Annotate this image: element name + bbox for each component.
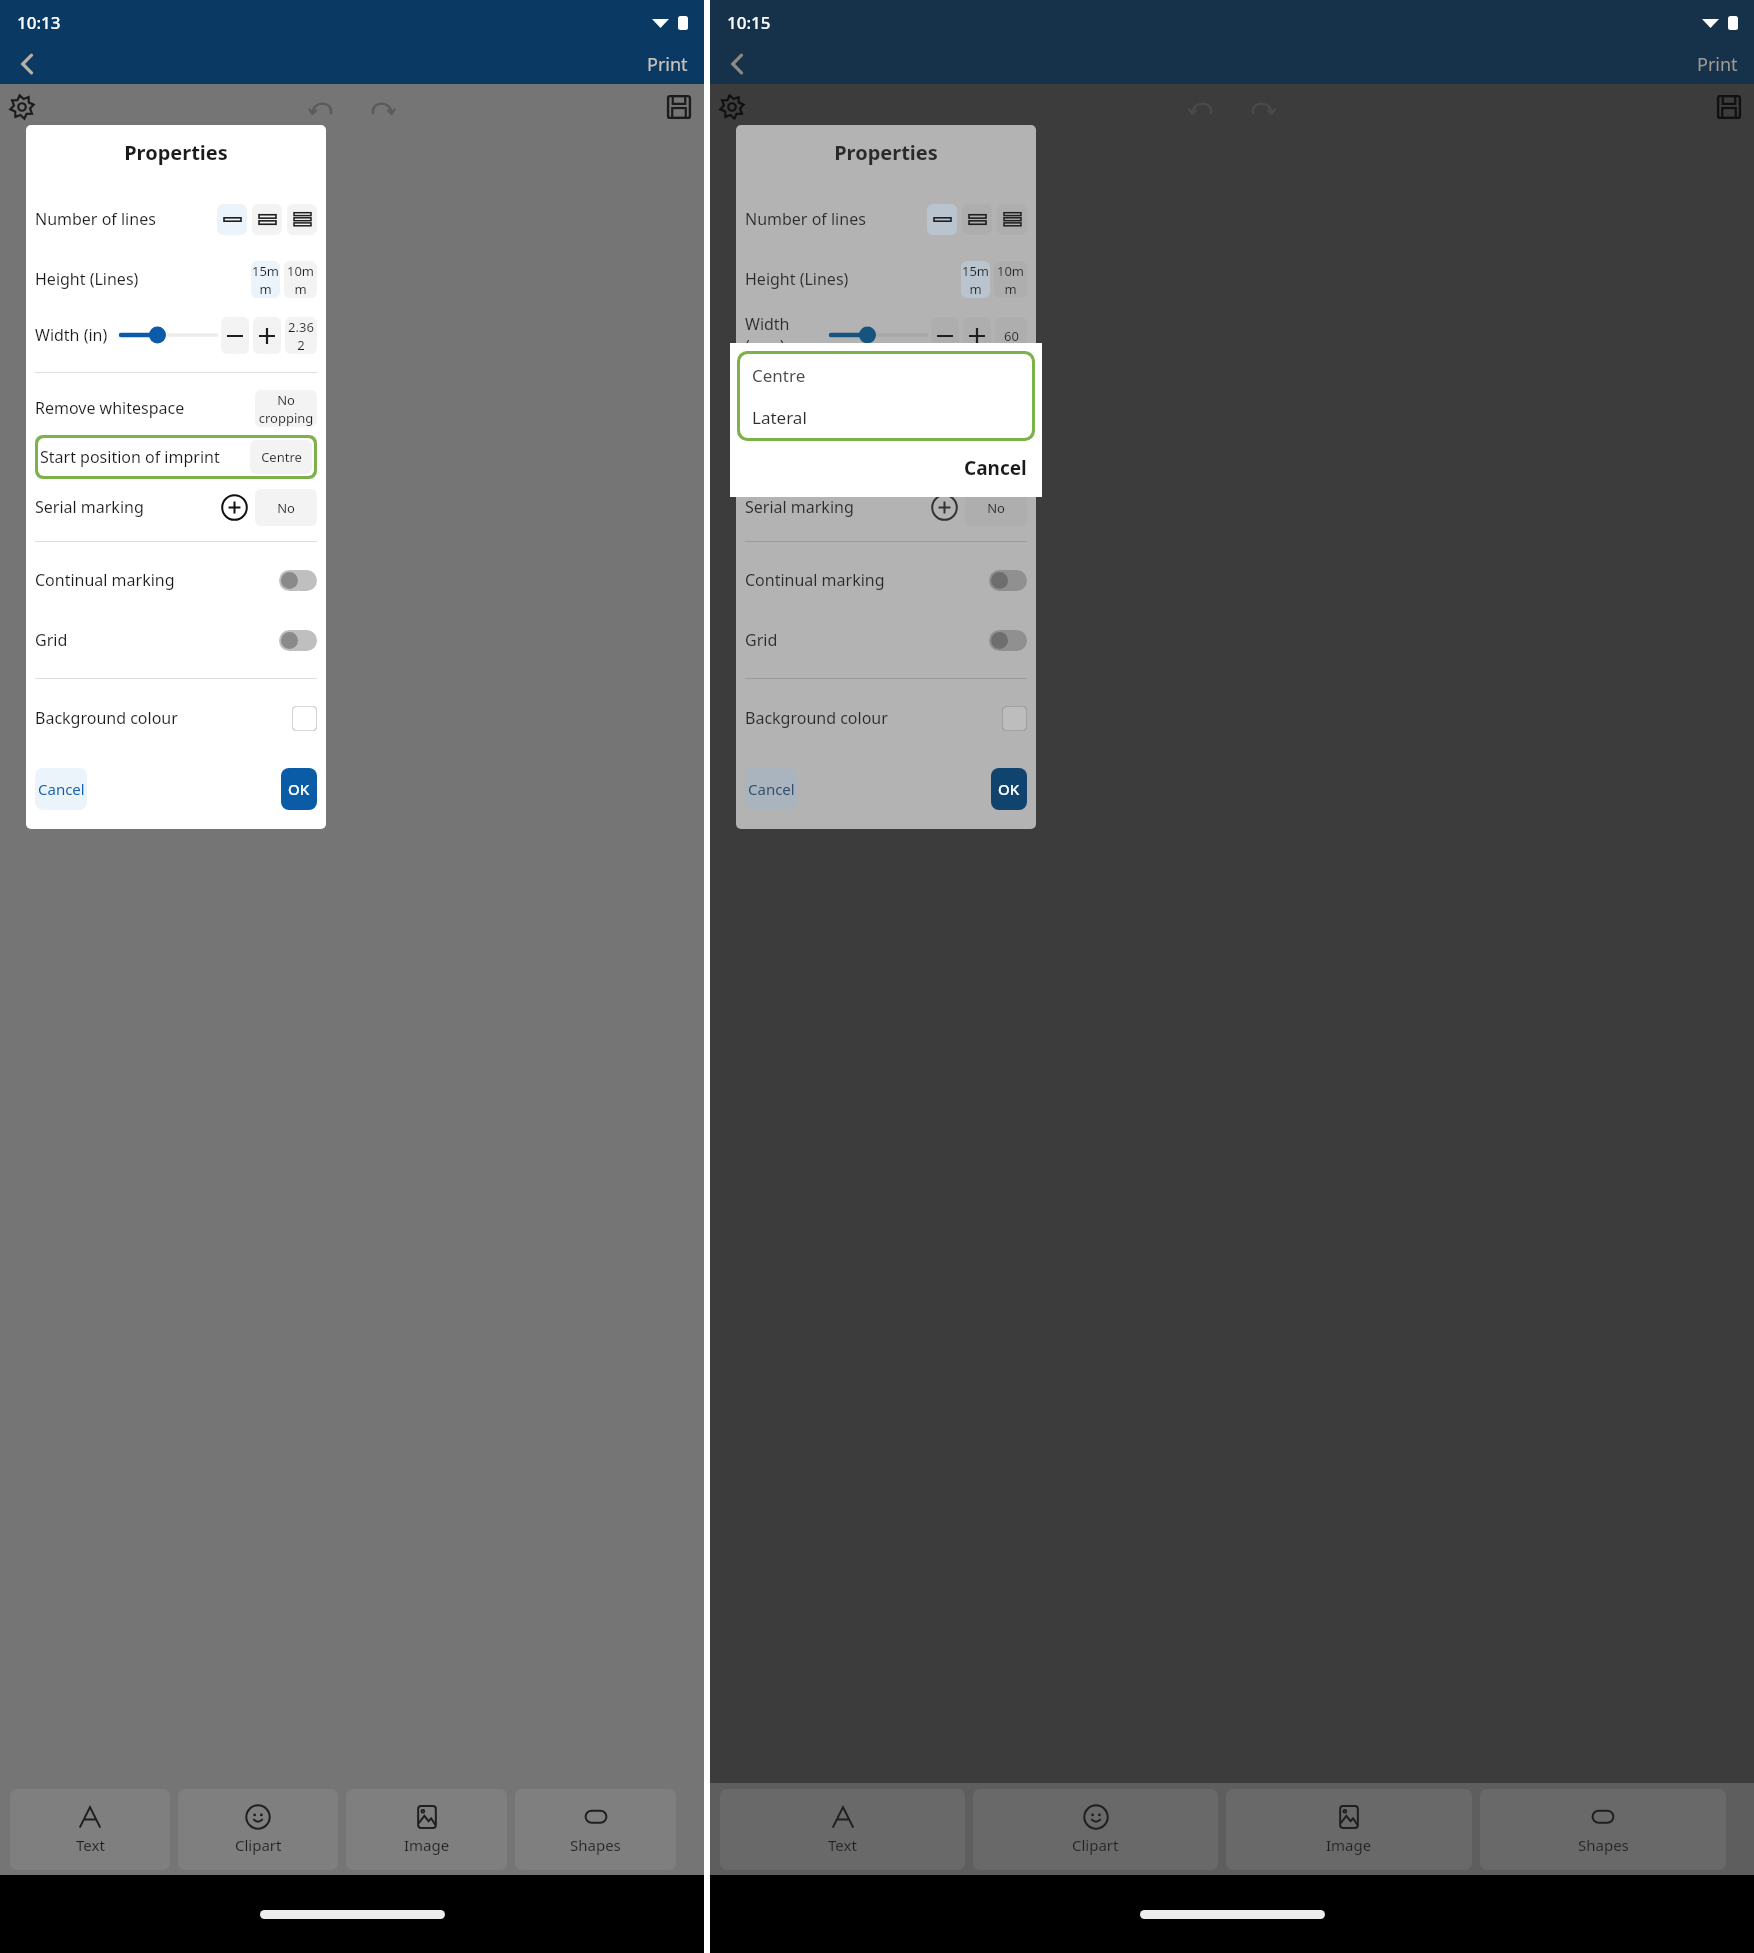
button[interactable]: Lateral xyxy=(740,396,1032,438)
staticText: Text xyxy=(76,1835,105,1855)
staticText: Serial marking xyxy=(745,496,928,518)
button[interactable]: Increase xyxy=(253,317,281,354)
button[interactable]: 15mm xyxy=(251,261,280,298)
button[interactable]: 2 line layout xyxy=(252,204,282,235)
staticText: No xyxy=(277,499,295,517)
staticText: Image xyxy=(404,1835,450,1855)
staticText: Grid xyxy=(745,629,989,651)
staticText: Background colour xyxy=(745,707,1002,729)
button[interactable]: Undo xyxy=(306,94,338,126)
staticText: Shapes xyxy=(570,1835,621,1855)
button[interactable]: 2.362 xyxy=(285,317,317,354)
staticText: Number of lines xyxy=(745,208,927,230)
button[interactable]: OK xyxy=(991,768,1027,810)
button[interactable]: Continual marking xyxy=(745,558,1027,602)
staticText: 15mm xyxy=(251,262,280,298)
button[interactable]: Settings xyxy=(5,90,39,124)
button[interactable]: Clipart xyxy=(178,1789,338,1870)
button[interactable]: Save xyxy=(1712,90,1746,124)
button[interactable]: Shapes xyxy=(1480,1789,1726,1870)
staticText: Shapes xyxy=(1578,1835,1629,1855)
staticText: Grid xyxy=(35,629,279,651)
staticText: Cancel xyxy=(38,779,85,799)
button[interactable]: Add serial marking xyxy=(218,491,250,523)
button[interactable]: No xyxy=(965,489,1027,526)
button[interactable]: Back xyxy=(8,44,48,84)
button[interactable]: Toggle xyxy=(989,570,1027,591)
staticText: OK xyxy=(288,779,310,799)
button[interactable]: Add serial marking xyxy=(928,491,960,523)
button[interactable]: Clipart xyxy=(973,1789,1218,1870)
staticText: Cancel xyxy=(964,455,1027,481)
button[interactable]: Toggle xyxy=(279,570,317,591)
button[interactable]: Redo xyxy=(366,94,398,126)
staticText: OK xyxy=(998,779,1020,799)
staticText: Cancel xyxy=(748,779,795,799)
button[interactable]: Text xyxy=(720,1789,965,1870)
button[interactable]: Cancel xyxy=(35,768,87,810)
button[interactable]: Centre xyxy=(963,440,1025,474)
staticText: Properties xyxy=(35,139,317,166)
button[interactable]: No cropping xyxy=(255,390,317,427)
button[interactable]: Decrease xyxy=(221,317,249,354)
button[interactable]: Decrease xyxy=(931,317,959,354)
staticText: Text xyxy=(828,1835,857,1855)
button[interactable]: No xyxy=(255,489,317,526)
staticText: Lateral xyxy=(752,406,807,429)
staticText: Width (in) xyxy=(35,324,117,346)
staticText: Height (Lines) xyxy=(745,268,961,290)
button[interactable]: Shapes xyxy=(515,1789,676,1870)
button[interactable]: Print xyxy=(647,52,688,77)
staticText: Start position of imprint xyxy=(40,446,250,468)
button[interactable]: Print xyxy=(1697,52,1738,77)
staticText: 10mm xyxy=(994,262,1027,298)
button[interactable]: Text xyxy=(10,1789,170,1870)
button[interactable]: Increase xyxy=(963,317,991,354)
button[interactable]: 60 xyxy=(995,317,1027,354)
button[interactable]: OK xyxy=(281,768,317,810)
button[interactable]: Centre xyxy=(740,354,1032,396)
button[interactable]: Cancel xyxy=(956,451,1035,485)
staticText: Serial marking xyxy=(35,496,218,518)
button[interactable]: Start position of imprint xyxy=(745,435,1027,479)
staticText: Remove whitespace xyxy=(745,397,965,419)
button[interactable]: Centre xyxy=(250,440,312,474)
button[interactable]: Toggle xyxy=(989,630,1027,651)
button[interactable]: 10mm xyxy=(284,261,317,298)
staticText: Remove whitespace xyxy=(35,397,255,419)
staticText: Background colour xyxy=(35,707,292,729)
staticText: 2.362 xyxy=(285,318,317,354)
button[interactable]: 3 line layout xyxy=(287,204,317,235)
button[interactable]: Background colour xyxy=(292,706,317,731)
button[interactable]: Settings xyxy=(715,90,749,124)
button[interactable]: Continual marking xyxy=(35,558,317,602)
button[interactable]: Start position of imprint xyxy=(38,438,314,476)
staticText: 10:13 xyxy=(17,11,61,34)
button[interactable]: 1 line layout xyxy=(927,204,957,235)
staticText: Print xyxy=(647,52,688,77)
button[interactable]: 2 line layout xyxy=(962,204,992,235)
button[interactable]: Back xyxy=(718,44,758,84)
button[interactable]: 1 line layout xyxy=(217,204,247,235)
staticText: No cropping xyxy=(255,391,317,427)
button[interactable]: 3 line layout xyxy=(997,204,1027,235)
button[interactable]: Save xyxy=(662,90,696,124)
button[interactable]: Undo xyxy=(1186,94,1218,126)
button[interactable]: 15mm xyxy=(961,261,990,298)
button[interactable]: Grid xyxy=(745,618,1027,662)
button[interactable]: Image xyxy=(1226,1789,1472,1870)
staticText: Continual marking xyxy=(35,569,279,591)
button[interactable]: 10mm xyxy=(994,261,1027,298)
button[interactable]: Grid xyxy=(35,618,317,662)
button[interactable]: Cancel xyxy=(745,768,797,810)
button[interactable]: Background colour xyxy=(1002,706,1027,731)
staticText: Clipart xyxy=(1072,1835,1119,1855)
button[interactable]: Toggle xyxy=(279,630,317,651)
button[interactable]: Redo xyxy=(1246,94,1278,126)
button[interactable]: Image xyxy=(346,1789,507,1870)
staticText: 15mm xyxy=(961,262,990,298)
staticText: Properties xyxy=(745,139,1027,166)
